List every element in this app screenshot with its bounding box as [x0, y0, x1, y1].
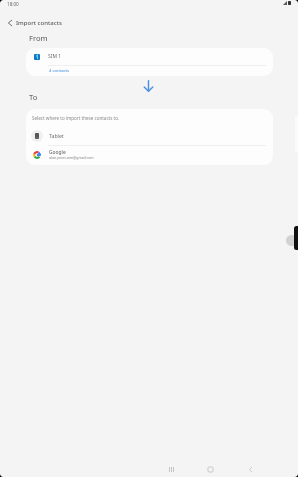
staticText: To	[29, 92, 38, 102]
staticText: 18:00	[7, 1, 19, 7]
staticText: Google	[49, 149, 66, 156]
button[interactable]: Edge panel	[294, 226, 298, 250]
staticText: Import contacts	[16, 19, 62, 27]
staticText: From	[29, 33, 48, 43]
button[interactable]: Navigate up	[1, 14, 18, 31]
button[interactable]: Google	[26, 146, 273, 164]
button[interactable]: Tablet	[26, 127, 273, 146]
staticText: Select where to import these contacts to…	[32, 115, 120, 121]
button[interactable]: Home	[202, 461, 219, 477]
staticText: SIM 1	[48, 53, 62, 60]
button[interactable]: SIM 1	[26, 48, 273, 65]
staticText: 4 contacts	[49, 68, 70, 74]
staticText: alan.jones.wm@gmail.com	[49, 155, 94, 160]
staticText: Tablet	[49, 132, 64, 139]
button[interactable]: Recent apps	[163, 461, 180, 477]
button[interactable]: Back	[242, 461, 259, 477]
button[interactable]: 4 contacts	[26, 66, 273, 76]
